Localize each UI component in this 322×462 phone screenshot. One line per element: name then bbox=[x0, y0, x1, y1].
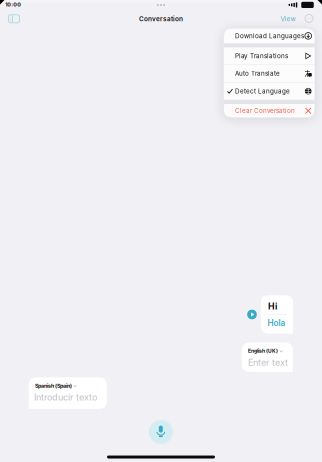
staticText: Spanish (Spain) bbox=[35, 382, 72, 389]
button[interactable]: Record bbox=[146, 417, 176, 447]
button[interactable]: Toggle Sidebar bbox=[5, 12, 23, 26]
button[interactable]: Play translation bbox=[245, 307, 259, 321]
staticText: View bbox=[280, 15, 295, 23]
staticText: English (UK) bbox=[248, 348, 278, 354]
button[interactable]: View bbox=[277, 12, 299, 26]
staticText: Conversation bbox=[139, 15, 183, 23]
staticText: 10:00 bbox=[5, 1, 21, 8]
staticText: Introducir texto bbox=[34, 392, 97, 403]
staticText: Hi bbox=[268, 301, 277, 311]
button[interactable]: Clear Conversation bbox=[224, 104, 315, 117]
staticText: Hola bbox=[267, 318, 285, 328]
staticText: Clear Conversation bbox=[235, 107, 295, 115]
staticText: Enter text bbox=[248, 357, 288, 368]
button[interactable]: More options bbox=[302, 11, 316, 25]
staticText: Download Languages bbox=[235, 32, 304, 40]
staticText: Play Translations bbox=[235, 52, 288, 60]
button[interactable]: Detect Language bbox=[224, 83, 315, 100]
staticText: Auto Translate bbox=[235, 70, 280, 77]
button[interactable]: Download Languages bbox=[224, 28, 315, 43]
button[interactable]: Play Translations bbox=[224, 47, 315, 64]
button[interactable]: Auto Translate bbox=[224, 65, 315, 82]
staticText: Detect Language bbox=[235, 87, 290, 95]
